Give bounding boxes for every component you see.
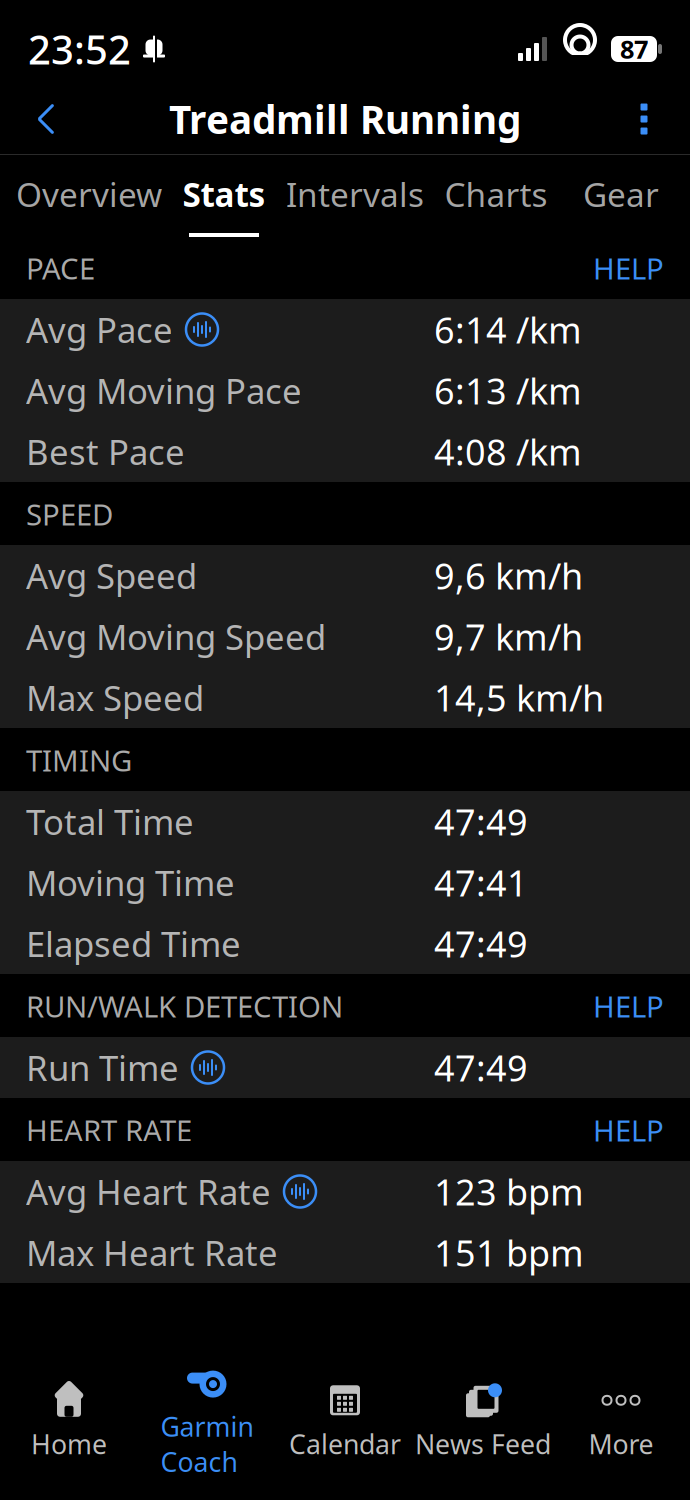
- button[interactable]: Avg Pace: [0, 299, 690, 360]
- staticText: 47:49: [434, 798, 528, 845]
- staticText: 151 bpm: [434, 1229, 584, 1276]
- staticText: 47:49: [434, 920, 528, 967]
- staticText: Max Heart Rate: [26, 1229, 278, 1275]
- button[interactable]: More: [552, 1372, 690, 1472]
- button[interactable]: Avg Moving Pace: [0, 360, 690, 421]
- button[interactable]: Max Heart Rate: [0, 1222, 690, 1283]
- staticText: RUN/WALK DETECTION: [26, 986, 343, 1025]
- staticText: 23:52: [28, 22, 131, 75]
- staticText: HEART RATE: [26, 1110, 192, 1149]
- staticText: Moving Time: [26, 859, 235, 905]
- staticText: Treadmill Running: [169, 93, 521, 145]
- staticText: 87: [620, 32, 648, 66]
- button[interactable]: Moving Time: [0, 852, 690, 913]
- staticText: Run Time: [26, 1044, 179, 1090]
- staticText: News Feed: [415, 1426, 551, 1462]
- staticText: Gear: [583, 172, 659, 216]
- button[interactable]: Charts: [431, 155, 561, 237]
- button[interactable]: Garmin Coach: [138, 1372, 276, 1472]
- staticText: 9,7 km/h: [434, 613, 583, 660]
- staticText: SPEED: [26, 494, 113, 533]
- staticText: 14,5 km/h: [434, 674, 604, 721]
- button[interactable]: More options: [612, 87, 676, 151]
- staticText: 47:49: [434, 1044, 528, 1091]
- button[interactable]: HELP: [573, 1102, 664, 1157]
- staticText: Stats: [182, 172, 265, 216]
- staticText: Elapsed Time: [26, 920, 241, 966]
- staticText: Max Speed: [26, 674, 204, 720]
- staticText: Avg Moving Pace: [26, 367, 302, 413]
- button[interactable]: Best Pace: [0, 421, 690, 482]
- staticText: Overview: [16, 172, 162, 216]
- staticText: More: [588, 1426, 653, 1462]
- button[interactable]: Stats: [169, 155, 279, 237]
- staticText: 9,6 km/h: [434, 552, 583, 599]
- button[interactable]: Total Time: [0, 791, 690, 852]
- button[interactable]: HELP: [573, 978, 664, 1033]
- staticText: 47:41: [434, 859, 528, 906]
- button[interactable]: HELP: [573, 240, 664, 295]
- button[interactable]: Run Time: [0, 1037, 690, 1098]
- staticText: Total Time: [26, 798, 194, 844]
- staticText: 123 bpm: [434, 1168, 584, 1215]
- staticText: HELP: [593, 248, 664, 287]
- staticText: HELP: [593, 1110, 664, 1149]
- button[interactable]: Avg Speed: [0, 545, 690, 606]
- button[interactable]: Gear: [561, 155, 681, 237]
- staticText: Avg Speed: [26, 552, 197, 598]
- button[interactable]: Home: [0, 1372, 138, 1472]
- staticText: 6:13 /km: [434, 367, 582, 414]
- staticText: Avg Moving Speed: [26, 613, 326, 659]
- button[interactable]: Intervals: [279, 155, 431, 237]
- button[interactable]: Elapsed Time: [0, 913, 690, 974]
- staticText: Best Pace: [26, 428, 185, 474]
- staticText: PACE: [26, 248, 95, 287]
- staticText: Avg Heart Rate: [26, 1168, 271, 1214]
- button[interactable]: Avg Moving Speed: [0, 606, 690, 667]
- button[interactable]: Avg Heart Rate: [0, 1161, 690, 1222]
- button[interactable]: Max Speed: [0, 667, 690, 728]
- staticText: Calendar: [289, 1426, 401, 1462]
- button[interactable]: Overview: [9, 155, 169, 237]
- staticText: 6:14 /km: [434, 306, 582, 353]
- staticText: Home: [31, 1426, 107, 1462]
- staticText: Charts: [444, 172, 547, 216]
- staticText: Intervals: [286, 172, 424, 216]
- button[interactable]: Back: [14, 87, 78, 151]
- button[interactable]: Calendar: [276, 1372, 414, 1472]
- button[interactable]: News Feed: [414, 1372, 552, 1472]
- staticText: Garmin Coach: [160, 1409, 253, 1479]
- staticText: TIMING: [26, 740, 132, 779]
- staticText: 4:08 /km: [434, 428, 582, 475]
- staticText: Avg Pace: [26, 306, 173, 352]
- staticText: HELP: [593, 986, 664, 1025]
